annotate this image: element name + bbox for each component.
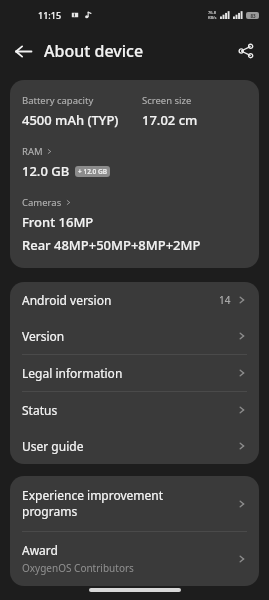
staticText: Experience improvement programs [22,487,237,520]
staticText: User guide [22,438,237,454]
button[interactable]: Android version [10,282,259,318]
button[interactable]: User guide [10,428,259,464]
staticText: 12.0 GB [22,162,70,180]
staticText: Android version [22,292,219,308]
staticText: 17.02 cm [142,111,198,129]
button[interactable]: RAM [22,145,53,158]
button[interactable]: Back [6,34,40,68]
staticText: 11:15 [38,9,62,21]
staticText: + 12.0 GB [78,167,107,176]
staticText: KB/s [208,15,217,20]
staticText: Version [22,328,237,344]
staticText: 4500 mAh (TYP) [22,111,119,129]
staticText: RAM [22,145,43,158]
staticText: 14 [219,293,231,307]
staticText: Front 16MP [22,213,94,231]
staticText: Battery capacity [22,94,94,107]
button[interactable]: Legal information [10,355,259,391]
button[interactable]: Cameras [22,196,72,209]
staticText: Rear 48MP+50MP+8MP+2MP [22,236,201,254]
button[interactable]: Award [10,532,259,586]
staticText: Status [22,402,237,418]
staticText: Screen size [142,94,192,107]
staticText: OxygenOS Contributors [22,561,134,575]
button[interactable]: Version [10,318,259,354]
staticText: Award [22,542,58,558]
button[interactable]: Share [229,34,263,68]
staticText: Cameras [22,196,62,209]
button[interactable]: Experience improvement programs [10,476,259,531]
button[interactable]: Status [10,392,259,428]
staticText: Legal information [22,365,237,381]
staticText: 83 [250,13,256,19]
staticText: About device [44,40,144,62]
staticText: 76.8 [208,10,216,15]
